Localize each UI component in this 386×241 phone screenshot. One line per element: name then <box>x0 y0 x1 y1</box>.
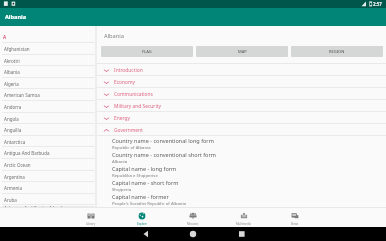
staticText: A <box>3 34 7 40</box>
button[interactable]: Akrotiri <box>0 55 95 66</box>
staticText: Capital name - long form <box>112 165 177 172</box>
button[interactable]: Missions <box>167 210 218 227</box>
staticText: Shqiperia <box>112 186 132 192</box>
staticText: Republika e Shqiperise <box>112 172 158 178</box>
button[interactable]: Military and Security <box>97 100 386 112</box>
staticText: Albania <box>5 13 27 21</box>
staticText: Library <box>86 222 96 226</box>
staticText: Arctic Ocean <box>4 162 31 168</box>
staticText: REGION <box>329 49 345 54</box>
staticText: Capital name - short form <box>112 179 179 186</box>
staticText: Communications <box>114 91 153 98</box>
button[interactable]: Arctic Ocean <box>0 159 95 171</box>
staticText: Country name - conventional long form <box>112 137 214 144</box>
button[interactable]: Government <box>97 124 386 136</box>
staticText: Albania <box>4 69 20 75</box>
staticText: Economy <box>114 79 136 86</box>
button[interactable]: Antarctica <box>0 136 95 147</box>
button[interactable]: Communications <box>97 88 386 100</box>
staticText: Albania <box>112 158 128 164</box>
staticText: Capital name - former <box>112 193 169 200</box>
staticText: Afghanistan <box>4 46 30 52</box>
staticText: American Samoa <box>4 92 40 98</box>
staticText: Ashmore And Cartier Islands <box>4 205 65 207</box>
staticText: Antigua And Barbuda <box>4 150 50 156</box>
button[interactable]: MAP <box>196 46 288 57</box>
button[interactable]: Anguilla <box>0 124 95 136</box>
staticText: Anguilla <box>4 127 22 133</box>
staticText: Antarctica <box>4 139 26 145</box>
staticText: Energy <box>114 115 130 122</box>
staticText: Missions <box>187 222 199 226</box>
button[interactable]: Argentina <box>0 171 95 182</box>
button[interactable]: Antigua And Barbuda <box>0 147 95 159</box>
button[interactable]: Albania <box>0 66 95 78</box>
button[interactable]: Aruba <box>0 194 95 205</box>
staticText: Andorra <box>4 104 22 110</box>
button[interactable]: Multimedia <box>218 210 269 227</box>
staticText: Armenia <box>4 185 22 191</box>
button[interactable]: REGION <box>291 46 383 57</box>
staticText: News <box>291 222 299 226</box>
staticText: People's Socialist Republic of Albania <box>112 200 186 206</box>
staticText: Military and Security <box>114 103 161 110</box>
button[interactable]: Economy <box>97 76 386 88</box>
staticText: 2:57 <box>373 1 382 7</box>
staticText: Albania <box>104 32 124 40</box>
button[interactable]: Introduction <box>97 64 386 76</box>
button[interactable]: FLAG <box>101 46 193 57</box>
button[interactable]: Explore <box>116 210 167 227</box>
staticText: FLAG <box>142 49 152 54</box>
staticText: Algeria <box>4 81 19 87</box>
button[interactable]: News <box>269 210 320 227</box>
button[interactable]: Angola <box>0 113 95 124</box>
staticText: Republic of Albania <box>112 144 151 150</box>
button[interactable]: Energy <box>97 112 386 124</box>
button[interactable]: Ashmore And Cartier Islands <box>0 205 95 207</box>
staticText: Introduction <box>114 67 143 74</box>
staticText: Akrotiri <box>4 58 20 64</box>
staticText: Angola <box>4 116 19 122</box>
button[interactable]: Afghanistan <box>0 43 95 55</box>
button[interactable]: Andorra <box>0 101 95 113</box>
staticText: Multimedia <box>236 222 251 226</box>
button[interactable]: Algeria <box>0 78 95 89</box>
button[interactable]: American Samoa <box>0 89 95 101</box>
button[interactable]: Library <box>66 210 116 227</box>
staticText: Country name - conventional short form <box>112 151 216 158</box>
staticText: Explore <box>137 222 147 226</box>
staticText: Government <box>114 127 143 134</box>
button[interactable]: Armenia <box>0 182 95 194</box>
staticText: MAP <box>238 49 247 54</box>
staticText: Aruba <box>4 197 17 203</box>
staticText: Argentina <box>4 174 25 180</box>
